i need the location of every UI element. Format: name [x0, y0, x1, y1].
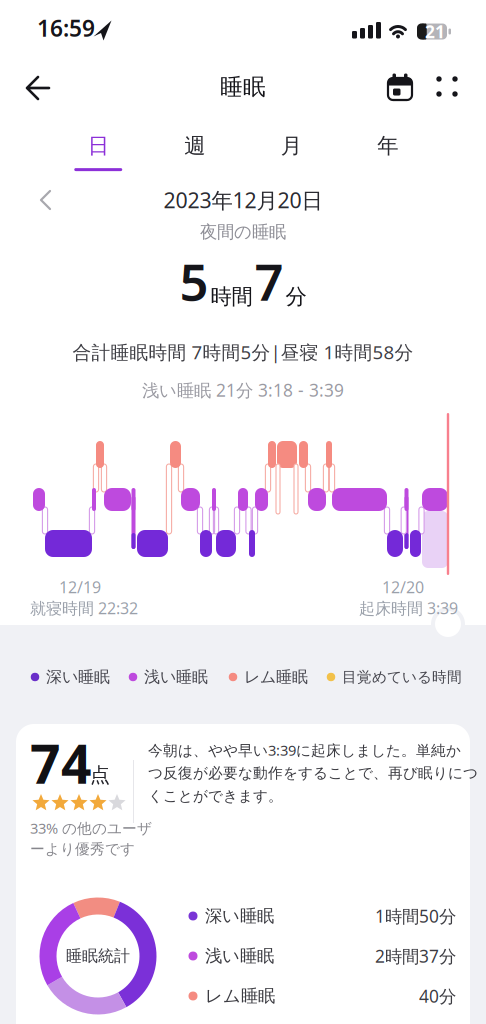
staticText: 深い睡眠 — [205, 905, 274, 927]
button[interactable]: 週 — [146, 133, 243, 171]
button[interactable]: Back — [20, 70, 56, 106]
staticText: くことができます。 — [148, 787, 283, 805]
staticText: 浅い睡眠 — [205, 945, 274, 967]
button[interactable]: 年 — [339, 133, 436, 171]
staticText: 33% の他のユーザ — [30, 818, 152, 838]
button[interactable]: More — [429, 68, 465, 104]
staticText: 12/19 — [59, 576, 101, 598]
staticText: 浅い睡眠 21分 3:18 - 3:39 — [142, 378, 344, 401]
staticText: 夜間の睡眠 — [200, 221, 286, 243]
staticText: 2023年12月20日 — [163, 186, 322, 214]
button[interactable]: Calendar — [382, 69, 418, 105]
staticText: 睡眠 — [220, 73, 266, 101]
staticText: 分 — [285, 283, 306, 310]
staticText: 16:59 — [37, 13, 95, 43]
staticText: 深い睡眠 — [46, 667, 110, 687]
staticText: 74 — [30, 728, 92, 798]
button[interactable]: Expand — [435, 611, 461, 637]
staticText: 12/20 — [382, 576, 424, 598]
staticText: 21 — [425, 20, 445, 43]
staticText: 起床時間 3:39 — [359, 597, 458, 619]
staticText: 浅い睡眠 — [144, 667, 208, 687]
button[interactable]: 日 — [50, 133, 146, 171]
staticText: 40分 — [419, 984, 456, 1007]
staticText: 週 — [184, 133, 205, 159]
staticText: つ反復が必要な動作をすることで、再び眠りにつ — [148, 764, 478, 782]
staticText: 睡眠統計 — [66, 946, 130, 966]
staticText: レム睡眠 — [205, 985, 275, 1007]
staticText: 合計睡眠時間 7時間5分|昼寝 1時間58分 — [72, 340, 413, 364]
staticText: 就寝時間 22:32 — [30, 597, 138, 619]
staticText: 日 — [88, 133, 109, 159]
staticText: 今朝は、やや早い3:39に起床しました。単純か — [148, 740, 461, 760]
staticText: ーより優秀です — [30, 840, 135, 858]
staticText: 点 — [90, 763, 110, 787]
staticText: 7 — [254, 247, 283, 315]
button[interactable]: 月 — [243, 133, 339, 171]
staticText: 5 — [179, 247, 208, 315]
staticText: 月 — [281, 133, 302, 159]
staticText: 1時間50分 — [375, 904, 456, 927]
staticText: 2時間37分 — [375, 944, 456, 967]
button[interactable]: Previous day — [30, 185, 60, 215]
staticText: 時間 — [210, 283, 252, 310]
staticText: 目覚めている時間 — [342, 668, 462, 686]
staticText: 年 — [377, 133, 398, 159]
staticText: レム睡眠 — [244, 667, 308, 687]
